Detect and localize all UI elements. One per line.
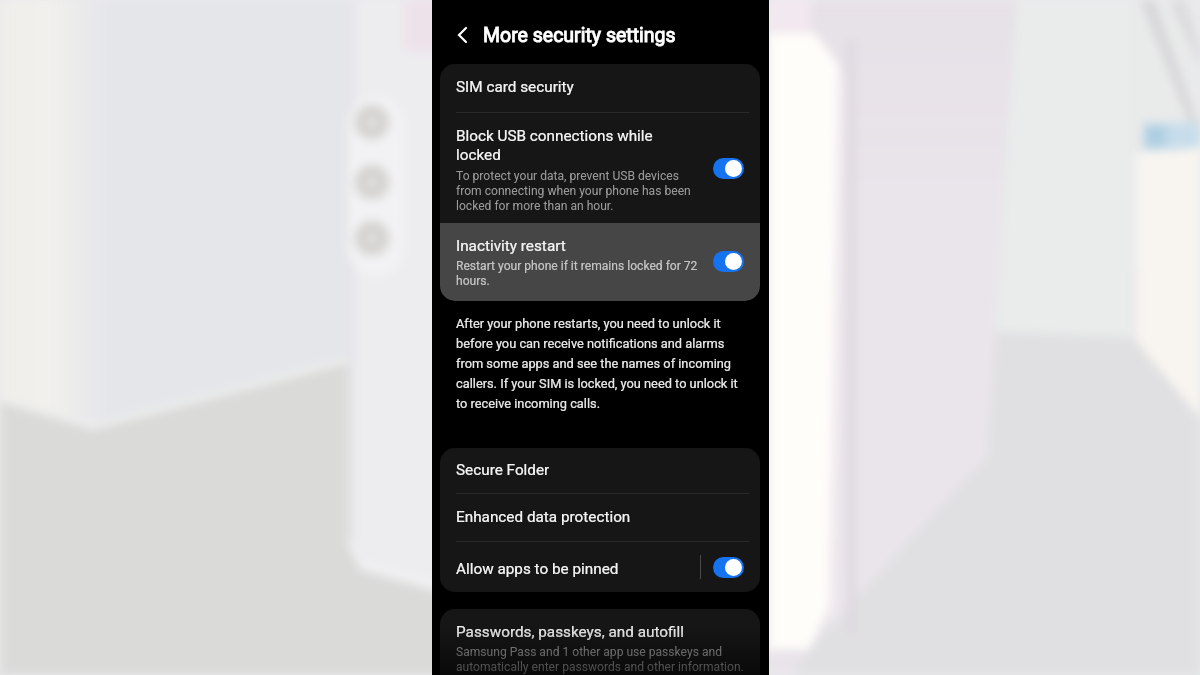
button[interactable]: Enhanced data protection [440, 494, 760, 541]
button[interactable]: Toggle on [713, 158, 744, 179]
button[interactable]: Passwords, passkeys, and autofill [440, 609, 760, 675]
staticText: Enhanced data protection [456, 505, 631, 526]
staticText: Secure Folder [456, 458, 550, 479]
staticText: Restart your phone if it remains locked … [456, 258, 700, 288]
staticText: After your phone restarts, you need to u… [456, 312, 741, 412]
staticText: SIM card security [456, 75, 574, 96]
button[interactable]: SIM card security [440, 64, 760, 112]
staticText: Block USB connections while locked [456, 126, 692, 164]
staticText: Inactivity restart [456, 236, 566, 255]
staticText: Passwords, passkeys, and autofill [456, 620, 684, 641]
staticText: Samsung Pass and 1 other app use passkey… [456, 644, 744, 674]
staticText: To protect your data, prevent USB device… [456, 168, 692, 213]
button[interactable]: Toggle on [713, 557, 744, 578]
staticText: More security settings [483, 23, 676, 47]
button[interactable]: Secure Folder [440, 448, 760, 493]
button[interactable]: Toggle on [713, 251, 744, 272]
button[interactable]: Inactivity restart [440, 223, 760, 301]
button[interactable]: Block USB connections while locked [440, 113, 760, 223]
staticText: Allow apps to be pinned [456, 557, 700, 578]
button[interactable]: Allow apps to be pinned [440, 542, 760, 592]
button[interactable]: Navigate up [449, 22, 475, 48]
